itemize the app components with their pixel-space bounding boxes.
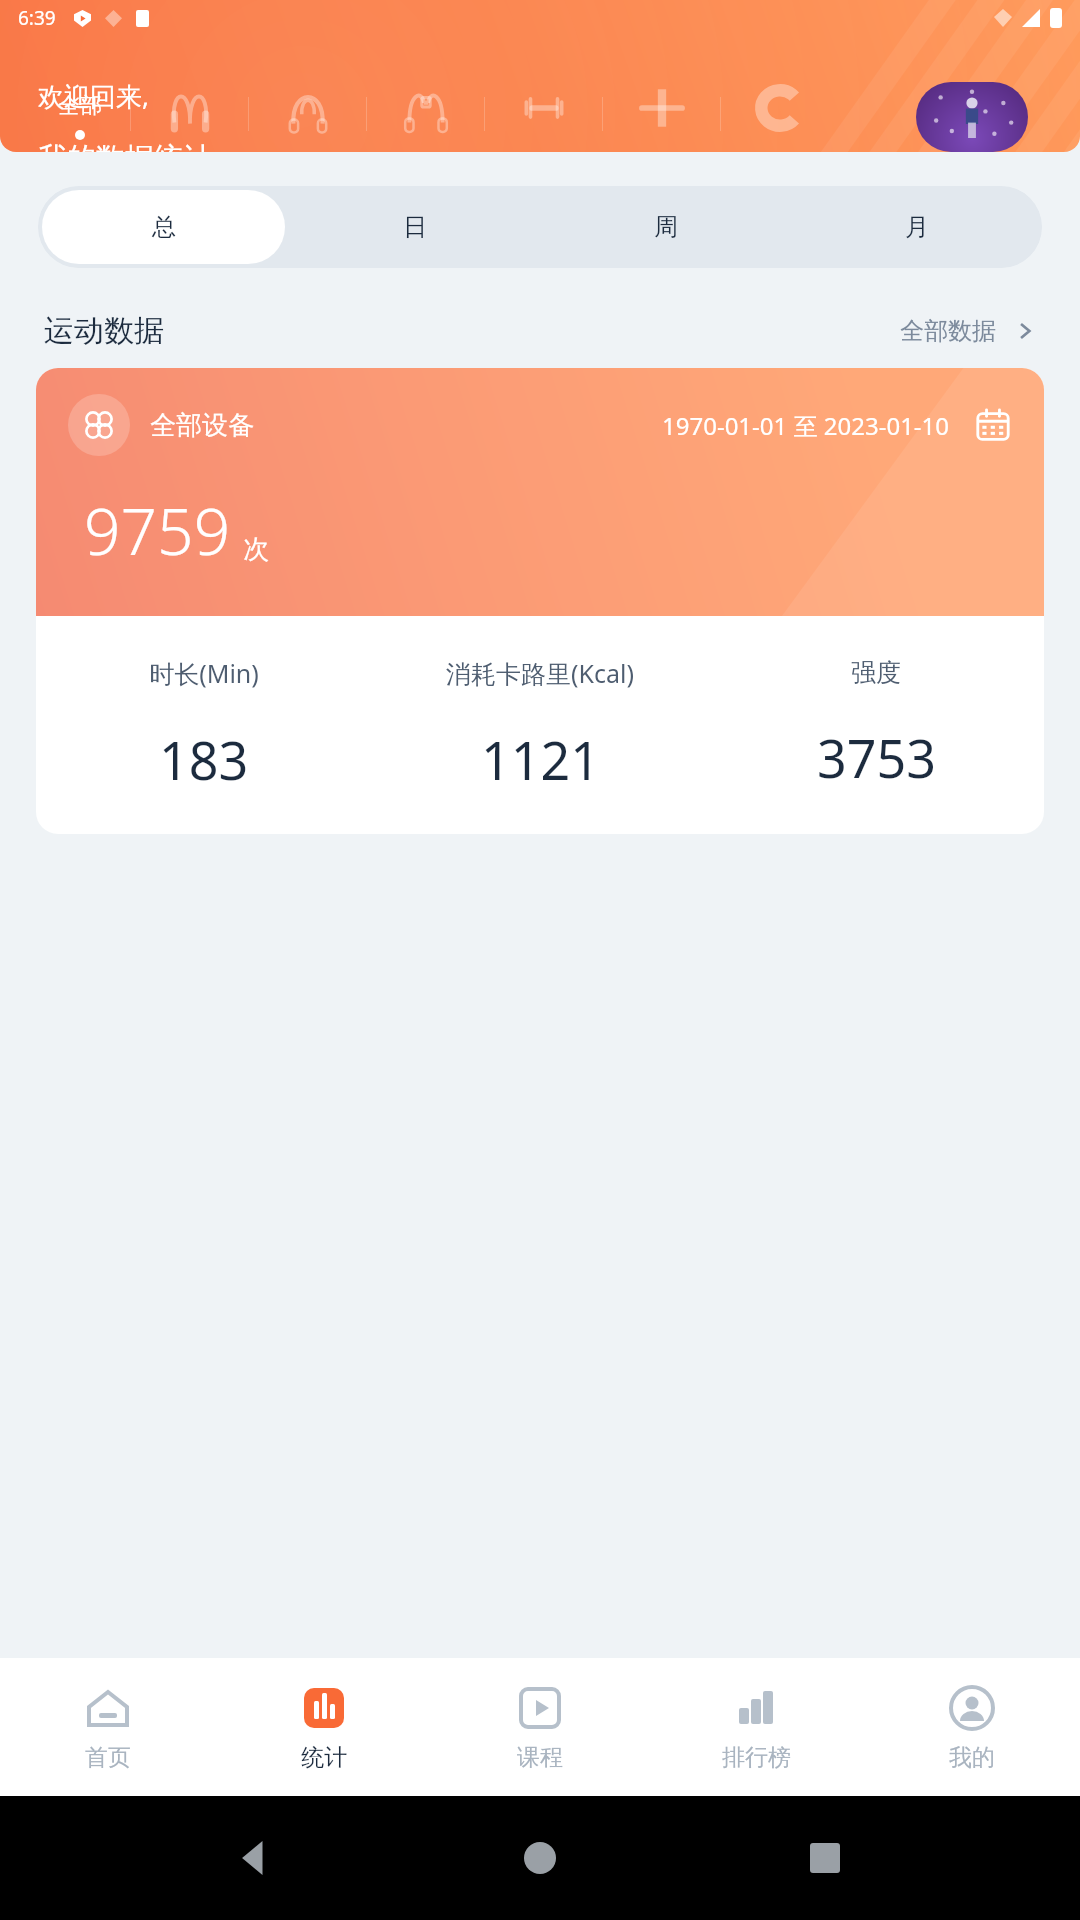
- button[interactable]: 消耗卡路里(Kcal): [372, 656, 708, 795]
- button[interactable]: 首页: [0, 1658, 216, 1796]
- button[interactable]: 排行榜: [648, 1658, 864, 1796]
- staticText: 首页: [85, 1743, 131, 1772]
- staticText: 周: [654, 212, 678, 242]
- staticText: 6:39: [18, 5, 56, 31]
- button[interactable]: 统计: [216, 1658, 432, 1796]
- button[interactable]: Dumbbell: [485, 76, 602, 152]
- button[interactable]: Roller: [721, 76, 838, 152]
- button[interactable]: 我的: [864, 1658, 1080, 1796]
- button[interactable]: 强度: [708, 657, 1044, 793]
- staticText: 1121: [481, 724, 600, 795]
- button[interactable]: Chest expander: [367, 76, 484, 152]
- staticText: 消耗卡路里(Kcal): [446, 656, 634, 690]
- button[interactable]: 全部: [30, 76, 130, 152]
- staticText: 时长(Min): [149, 656, 259, 690]
- staticText: 排行榜: [722, 1743, 791, 1772]
- button[interactable]: Jump rope: [131, 76, 248, 152]
- staticText: 欢迎回来,: [38, 78, 149, 114]
- staticText: 183: [159, 724, 249, 795]
- staticText: 强度: [851, 657, 901, 688]
- staticText: 课程: [517, 1743, 563, 1772]
- staticText: 9759: [84, 487, 231, 574]
- staticText: 运动数据: [44, 312, 164, 350]
- staticText: 1970-01-01 至 2023-01-10: [662, 409, 950, 442]
- button[interactable]: 全部设备: [36, 368, 1044, 834]
- staticText: 全部数据: [900, 316, 996, 346]
- button[interactable]: Back: [225, 1828, 285, 1888]
- button[interactable]: Hand grip: [249, 76, 366, 152]
- staticText: 统计: [301, 1743, 347, 1772]
- button[interactable]: 总: [42, 190, 285, 264]
- staticText: 我的数据统计: [38, 140, 212, 152]
- staticText: 次: [243, 533, 269, 566]
- button[interactable]: Select date range: [974, 406, 1012, 444]
- button[interactable]: 课程: [432, 1658, 648, 1796]
- button[interactable]: 日: [293, 190, 536, 264]
- button[interactable]: 时长(Min): [36, 656, 372, 795]
- staticText: 月: [905, 212, 929, 242]
- staticText: 3753: [817, 722, 936, 793]
- staticText: 全部: [58, 92, 102, 120]
- staticText: 全部设备: [150, 409, 254, 442]
- staticText: 我的: [949, 1743, 995, 1772]
- button[interactable]: 周: [544, 190, 787, 264]
- staticText: 日: [403, 212, 427, 242]
- button[interactable]: Profile avatar: [916, 82, 1028, 152]
- button[interactable]: Barbell: [603, 76, 720, 152]
- button[interactable]: 月: [795, 190, 1038, 264]
- button[interactable]: Home: [510, 1828, 570, 1888]
- button[interactable]: Recents: [795, 1828, 855, 1888]
- button[interactable]: 运动数据: [44, 312, 1036, 350]
- staticText: 总: [152, 212, 176, 242]
